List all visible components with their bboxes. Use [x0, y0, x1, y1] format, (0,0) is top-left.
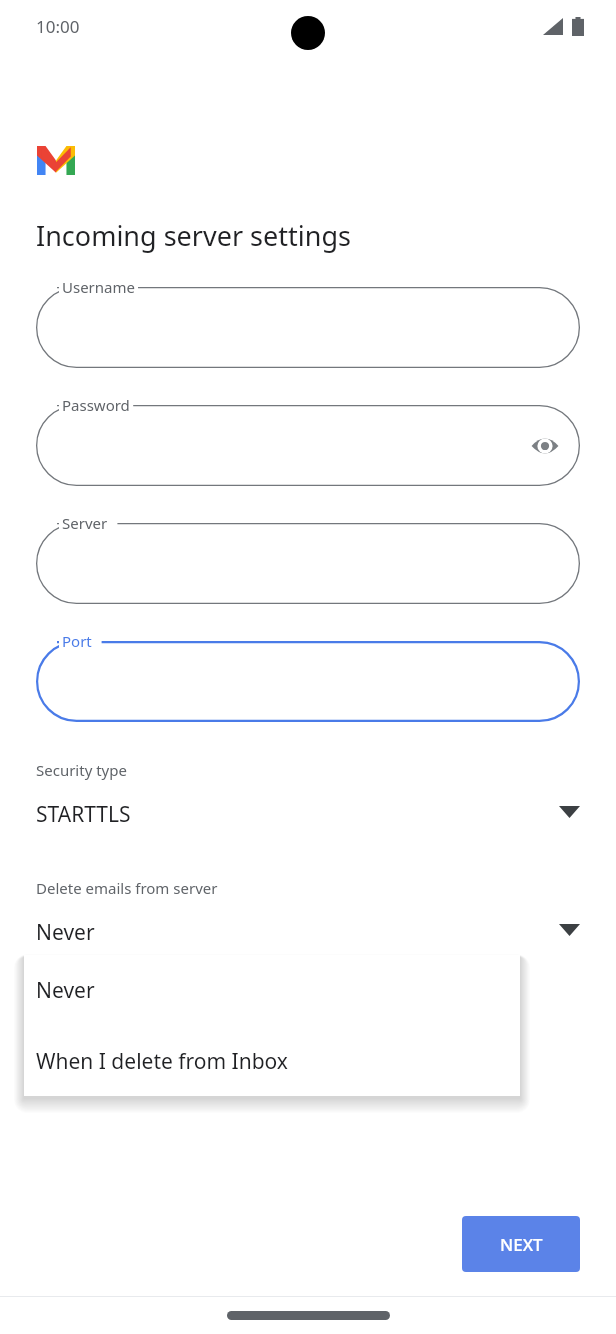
button[interactable]: Username	[36, 287, 580, 368]
staticText: Password	[62, 395, 130, 415]
staticText: Security type	[36, 760, 127, 780]
staticText: When I delete from Inbox	[36, 1047, 288, 1076]
staticText: Incoming server settings	[36, 217, 351, 254]
button[interactable]: Delete emails from server	[36, 878, 580, 947]
staticText: Port	[62, 631, 92, 651]
staticText: NEXT	[500, 1233, 543, 1256]
staticText: Username	[62, 277, 135, 297]
button[interactable]: NEXT	[462, 1216, 580, 1272]
button[interactable]: Password	[36, 405, 580, 486]
button[interactable]: Never	[24, 955, 520, 1026]
staticText: Never	[36, 976, 95, 1005]
button[interactable]: Security type	[36, 760, 580, 829]
staticText: Delete emails from server	[36, 878, 218, 898]
staticText: 10:00	[36, 15, 80, 38]
staticText: STARTTLS	[36, 800, 131, 829]
button[interactable]: Port	[36, 641, 580, 722]
button[interactable]: When I delete from Inbox	[24, 1026, 520, 1096]
staticText: Never	[36, 918, 95, 947]
button[interactable]: Server	[36, 523, 580, 604]
button[interactable]: Show password	[526, 427, 564, 465]
staticText: Server	[62, 513, 108, 533]
